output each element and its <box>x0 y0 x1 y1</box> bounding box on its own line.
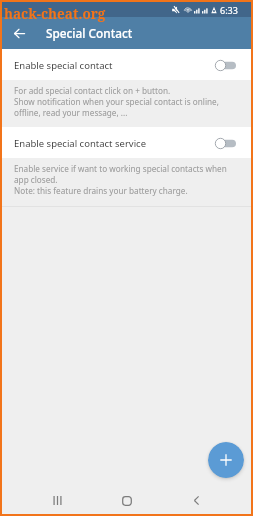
button[interactable]: Home <box>114 487 140 514</box>
staticText: Special Contact <box>46 25 133 41</box>
button[interactable]: Toggle <box>215 138 236 149</box>
staticText: Enable service if want to working specia… <box>14 163 227 174</box>
button[interactable]: Enable special contact service <box>2 127 251 158</box>
button[interactable]: Navigate up <box>5 17 33 49</box>
staticText: app closed. <box>14 174 58 185</box>
button[interactable]: Enable special contact <box>2 49 251 80</box>
button[interactable]: Toggle <box>215 60 236 71</box>
button[interactable]: Add special contact <box>208 442 244 478</box>
button[interactable]: Recent apps <box>44 487 70 514</box>
staticText: Enable special contact <box>14 59 113 72</box>
staticText: Enable special contact service <box>14 137 147 150</box>
staticText: Note: this feature drains your battery c… <box>14 185 188 196</box>
staticText: hack-cheat.org <box>4 5 106 23</box>
staticText: Show notification when your special cont… <box>14 96 219 107</box>
staticText: 6:33 <box>220 4 238 16</box>
button[interactable]: Back <box>183 487 209 514</box>
staticText: offline, read your message, ... <box>14 107 128 118</box>
staticText: For add special contact click on + butto… <box>14 85 171 96</box>
